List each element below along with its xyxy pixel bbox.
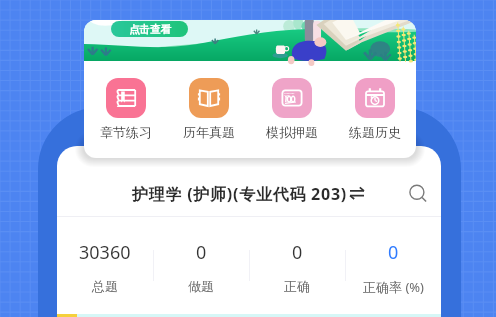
staticText: 0 [196,240,207,265]
staticText: 护理学 (护师)(专业代码 203) [132,183,347,205]
staticText: 0 [388,240,399,265]
button[interactable]: 模拟押题 [250,78,333,140]
button[interactable]: 历年真题 [167,78,250,140]
button[interactable]: 章节练习 [84,78,167,140]
button[interactable]: 护理学 (护师)(专业代码 203) [132,183,367,205]
staticText: 点击查看 [129,23,171,36]
staticText: 0 [292,240,303,265]
staticText: 模拟押题 [266,124,318,140]
staticText: 历年真题 [183,124,235,140]
button[interactable]: 点击查看 [111,21,188,37]
button[interactable]: 30360 [57,217,153,317]
button[interactable]: 0 [345,217,441,317]
staticText: 正确率 (%) [363,278,424,296]
staticText: 正确 [284,278,310,294]
staticText: 总题 [92,278,118,294]
staticText: 30360 [79,240,131,265]
staticText: 练题历史 [349,124,401,140]
button[interactable]: Search [403,179,433,209]
staticText: 做题 [188,278,214,294]
staticText: 章节练习 [100,124,152,140]
button[interactable]: 0 [249,217,345,317]
button[interactable]: 0 [153,217,249,317]
button[interactable]: 练题历史 [333,78,416,140]
